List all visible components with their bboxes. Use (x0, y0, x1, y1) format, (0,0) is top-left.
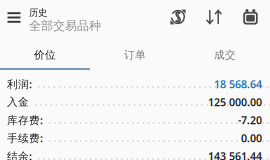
staticText: 价位 (34, 48, 56, 61)
button[interactable]: 成交 (180, 45, 270, 65)
staticText: 143 561.44 (208, 149, 262, 160)
staticText: 历史 (29, 7, 47, 18)
staticText: -7.20 (238, 113, 262, 127)
staticText: 成交 (214, 48, 236, 61)
button[interactable]: 订单 (90, 45, 180, 65)
button[interactable]: Currency exchange (161, 0, 195, 34)
staticText: 手续费: (7, 131, 43, 145)
staticText: 利润: (7, 77, 32, 91)
staticText: 订单 (124, 48, 146, 61)
staticText: 125 000.00 (208, 95, 262, 109)
button[interactable]: Sort (195, 0, 233, 34)
button[interactable]: Calendar (233, 0, 268, 34)
staticText: 18 568.64 (214, 77, 262, 91)
staticText: 库存费: (7, 113, 43, 127)
button[interactable]: Menu (3, 0, 25, 34)
button[interactable]: 价位 (0, 45, 90, 65)
staticText: 结余: (7, 149, 32, 160)
staticText: 入金 (7, 95, 29, 108)
staticText: 0.00 (241, 131, 262, 145)
staticText: 全部交易品种 (29, 18, 101, 33)
